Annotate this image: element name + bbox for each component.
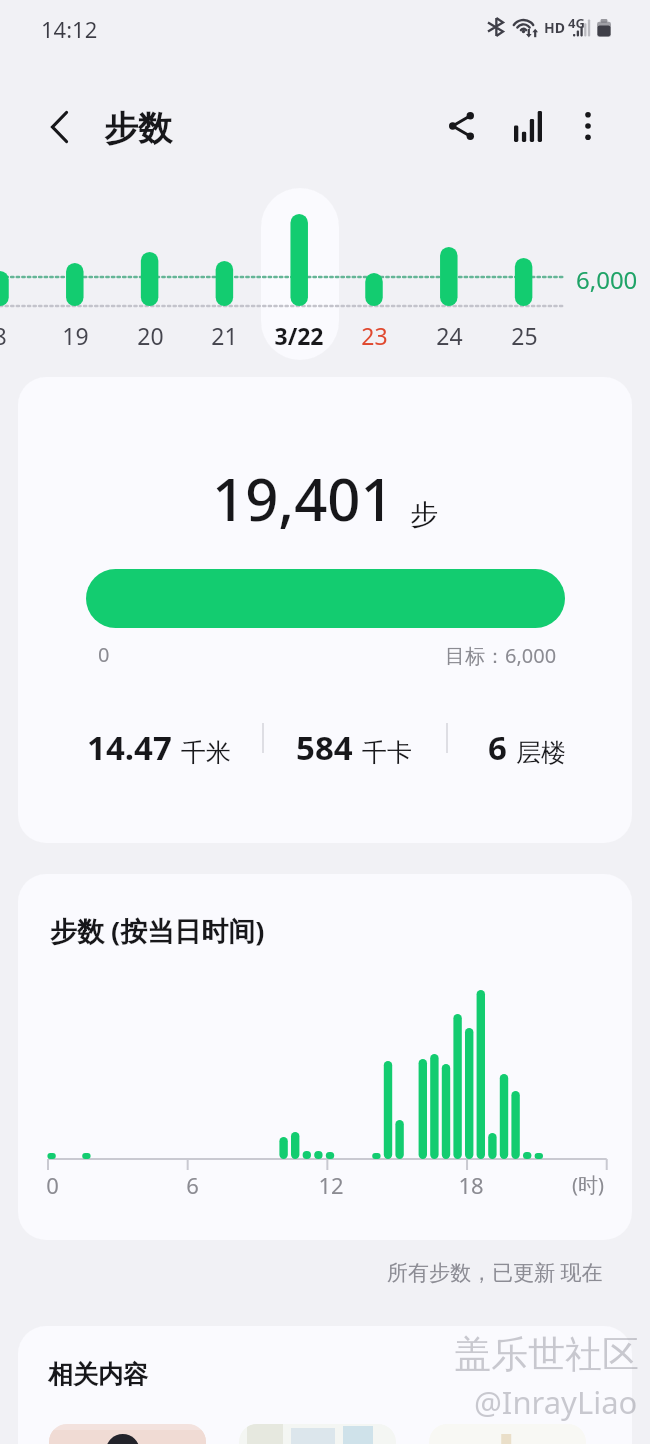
staticText: 20	[137, 320, 164, 351]
button[interactable]: Share	[432, 97, 490, 155]
staticText: 6	[186, 1170, 199, 1200]
staticText: 584	[296, 725, 353, 770]
staticText: HD	[544, 18, 565, 37]
staticText: 18	[458, 1170, 484, 1200]
button[interactable]	[239, 1424, 396, 1444]
button[interactable]: More options	[559, 97, 617, 155]
staticText: 3/22	[274, 320, 324, 351]
staticText: 21	[211, 320, 238, 351]
staticText: 14.47	[87, 725, 172, 770]
staticText: 步	[410, 497, 438, 532]
button[interactable]: Back	[35, 103, 83, 151]
staticText: 0	[46, 1170, 59, 1200]
staticText: 25	[511, 320, 538, 351]
button[interactable]	[261, 188, 339, 360]
staticText: @InrayLiao	[474, 1381, 638, 1423]
button[interactable]: 步数 (按当日时间)	[18, 874, 632, 1240]
staticText: 目标：6,000	[445, 642, 557, 669]
staticText: 8	[0, 320, 7, 351]
button[interactable]: 相关内容	[18, 1326, 632, 1444]
staticText: (时)	[572, 1171, 604, 1198]
staticText: 千米	[181, 737, 231, 768]
staticText: 19	[62, 320, 89, 351]
staticText: 层楼	[516, 737, 566, 768]
staticText: 0	[98, 641, 110, 668]
staticText: 所有步数，已更新 现在	[387, 1258, 603, 1287]
staticText: 相关内容	[48, 1359, 148, 1390]
staticText: 盖乐世社区	[454, 1331, 639, 1378]
staticText: 19,401	[212, 459, 394, 538]
staticText: 12	[318, 1170, 344, 1200]
button[interactable]: 19,401	[18, 377, 632, 843]
button[interactable]: Statistics	[499, 97, 557, 155]
staticText: 14:12	[41, 14, 98, 44]
staticText: 6,000	[576, 263, 638, 296]
button[interactable]	[49, 1424, 206, 1444]
staticText: 步数 (按当日时间)	[50, 912, 265, 949]
staticText: 23	[361, 320, 388, 351]
staticText: 4G	[568, 14, 585, 32]
staticText: 步数	[104, 107, 172, 150]
staticText: 千卡	[362, 737, 412, 768]
staticText: 6	[488, 725, 507, 770]
staticText: 24	[436, 320, 463, 351]
button[interactable]	[429, 1424, 586, 1444]
button[interactable]: 步数	[96, 93, 180, 163]
